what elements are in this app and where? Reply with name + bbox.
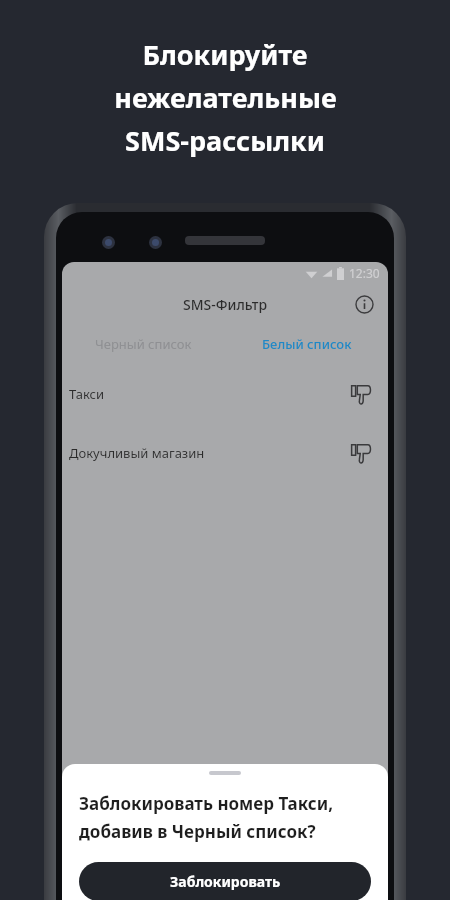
staticText: Такси	[69, 385, 105, 403]
staticText: SMS-Фильтр	[183, 295, 268, 314]
staticText: Заблокировать номер Такси,	[79, 792, 334, 815]
button[interactable]: Заблокировать Такси	[346, 379, 376, 409]
button[interactable]: Такси	[62, 364, 388, 423]
staticText: Докучливый магазин	[69, 444, 205, 462]
staticText: Блокируйте	[142, 36, 308, 73]
button[interactable]: Заблокировать Докучливый магазин	[346, 438, 376, 468]
staticText: нежелательные	[114, 79, 337, 116]
staticText: Черный список	[95, 335, 192, 353]
staticText: SMS-рассылки	[125, 122, 325, 159]
button[interactable]: Докучливый магазин	[62, 423, 388, 482]
button[interactable]: Информация	[350, 290, 378, 318]
staticText: Заблокировать	[170, 872, 281, 891]
staticText: добавив в Черный список?	[79, 820, 316, 843]
button[interactable]: Белый список	[225, 324, 388, 364]
staticText: 12:30	[349, 265, 380, 281]
staticText: Белый список	[262, 335, 352, 353]
button[interactable]: Черный список	[62, 324, 225, 364]
button[interactable]: Заблокировать	[79, 862, 371, 900]
